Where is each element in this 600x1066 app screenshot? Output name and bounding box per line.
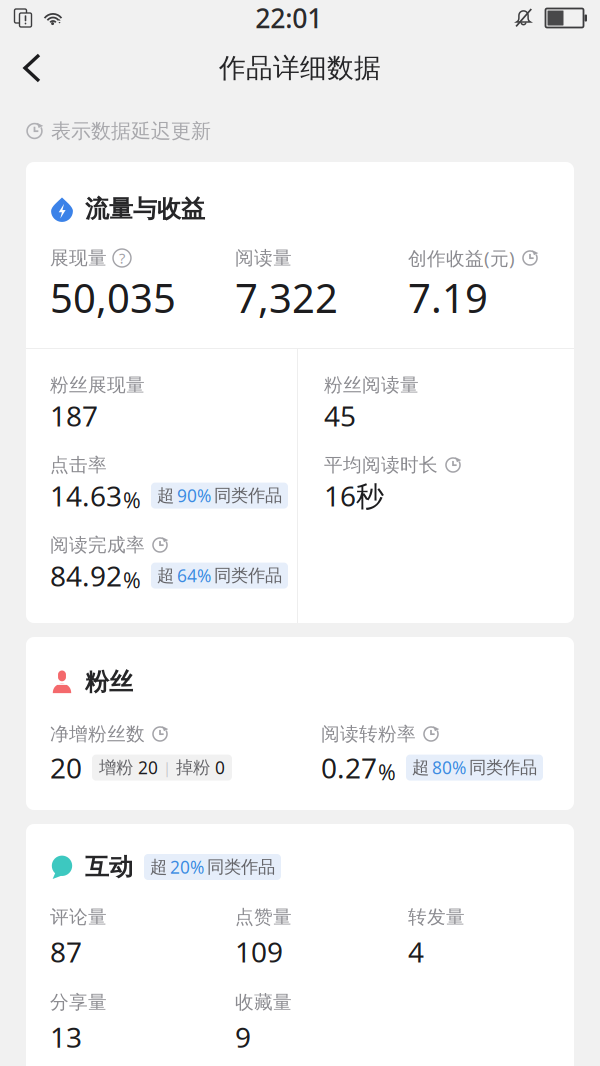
staticText: 粉丝阅读量	[324, 373, 419, 396]
staticText: 流量与收益	[85, 194, 205, 224]
staticText: 超	[412, 757, 429, 778]
staticText: 7,322	[235, 271, 338, 324]
staticText: 7.19	[408, 271, 488, 324]
staticText: 16秒	[324, 477, 384, 514]
staticText: 超	[157, 565, 174, 586]
staticText: 同类作品	[207, 856, 275, 878]
staticText: 0	[215, 756, 225, 779]
staticText: 平均阅读时长	[324, 453, 438, 476]
staticText: 粉丝展现量	[50, 373, 145, 396]
staticText: %	[123, 566, 141, 594]
button[interactable]: Back	[0, 40, 60, 96]
staticText: 109	[235, 933, 283, 970]
staticText: 20	[138, 756, 158, 779]
staticText: 掉粉	[176, 757, 210, 778]
staticText: 阅读转粉率	[321, 722, 416, 745]
staticText: 增粉	[99, 757, 133, 778]
staticText: |	[163, 758, 171, 777]
staticText: 50,035	[50, 271, 176, 324]
staticText: 转发量	[408, 905, 465, 928]
staticText: 84.92	[50, 557, 122, 594]
staticText: 阅读完成率	[50, 533, 145, 556]
staticText: %	[123, 486, 141, 514]
staticText: 同类作品	[214, 485, 282, 506]
staticText: 点赞量	[235, 905, 292, 928]
staticText: 同类作品	[469, 757, 537, 778]
staticText: 创作收益(元)	[408, 246, 515, 270]
staticText: 展现量	[50, 246, 107, 269]
staticText: %	[378, 758, 396, 786]
staticText: 评论量	[50, 905, 107, 928]
staticText: 超	[150, 856, 167, 878]
staticText: 0.27	[321, 749, 377, 786]
staticText: 互动	[85, 852, 133, 882]
staticText: 22:01	[255, 0, 322, 36]
staticText: 表示数据延迟更新	[51, 119, 211, 143]
staticText: 87	[50, 933, 82, 970]
staticText: 45	[324, 397, 356, 434]
staticText: 20	[50, 749, 82, 786]
staticText: 80%	[432, 756, 466, 779]
staticText: 超	[157, 485, 174, 506]
staticText: 点击率	[50, 453, 107, 476]
staticText: ?	[119, 248, 125, 268]
staticText: 作品详细数据	[219, 52, 381, 84]
staticText: 14.63	[50, 477, 122, 514]
staticText: 4	[408, 933, 424, 970]
staticText: 阅读量	[235, 246, 292, 269]
staticText: 粉丝	[85, 667, 133, 697]
staticText: 90%	[177, 484, 211, 507]
staticText: 64%	[177, 564, 211, 587]
staticText: 分享量	[50, 991, 107, 1014]
staticText: 净增粉丝数	[50, 722, 145, 745]
staticText: 9	[235, 1018, 251, 1055]
staticText: 同类作品	[214, 565, 282, 586]
staticText: 13	[50, 1018, 82, 1055]
staticText: 187	[50, 397, 98, 434]
staticText: 收藏量	[235, 991, 292, 1014]
staticText: 20%	[170, 855, 204, 878]
